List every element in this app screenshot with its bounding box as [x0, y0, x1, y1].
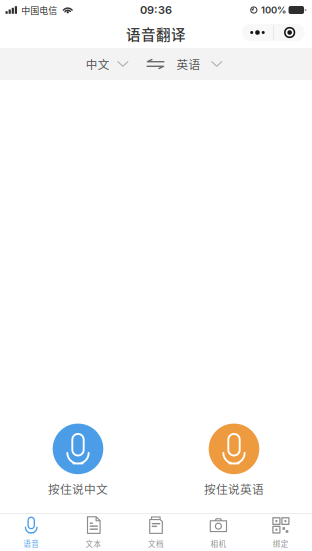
button[interactable]: 按住说英语	[156, 426, 312, 495]
staticText: 按住说英语	[204, 480, 264, 497]
button[interactable]: More	[242, 24, 273, 41]
button[interactable]: 按住说中文	[0, 426, 156, 495]
staticText: 相机	[210, 538, 226, 549]
staticText: 语音翻译	[126, 23, 186, 44]
staticText: 文档	[148, 538, 164, 549]
staticText: 语音	[23, 538, 39, 549]
button[interactable]: 中文	[82, 48, 132, 80]
staticText: 100%	[261, 4, 286, 16]
button[interactable]: 相机	[187, 514, 250, 551]
button[interactable]: Close	[274, 24, 305, 41]
button[interactable]: 英语	[172, 48, 226, 80]
staticText: 按住说中文	[48, 480, 108, 497]
button[interactable]: 文档	[125, 514, 187, 551]
staticText: 英语	[176, 56, 200, 72]
staticText: 09:36	[140, 3, 172, 17]
staticText: 中文	[86, 56, 110, 72]
button[interactable]: Swap languages	[142, 48, 168, 80]
staticText: 绑定	[273, 538, 289, 549]
staticText: 中国电信	[21, 3, 57, 16]
staticText: 文本	[86, 538, 102, 549]
button[interactable]: 绑定	[250, 514, 312, 551]
button[interactable]: 文本	[62, 514, 125, 551]
button[interactable]: 语音	[0, 514, 62, 551]
